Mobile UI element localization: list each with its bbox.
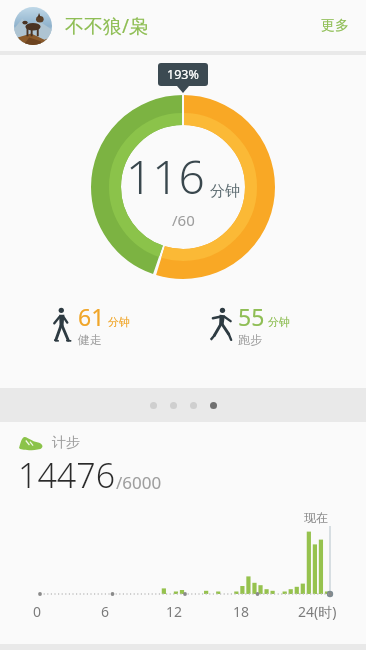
staticText: 14476 (18, 452, 116, 498)
staticText: 6 (101, 602, 110, 621)
button[interactable]: 不不狼/枭 (65, 13, 149, 39)
button[interactable]: Profile picture (14, 7, 52, 45)
button[interactable]: 193% (0, 55, 366, 388)
staticText: 更多 (321, 17, 349, 35)
staticText: 12 (166, 602, 183, 621)
staticText: /6000 (116, 471, 162, 494)
staticText: 0 (33, 602, 42, 621)
button[interactable]: 55 (210, 301, 290, 347)
button[interactable]: 更多 (304, 3, 366, 49)
staticText: 现在 (304, 510, 328, 525)
staticText: 193% (167, 66, 199, 83)
staticText: 61 (78, 301, 105, 332)
staticText: 18 (233, 602, 250, 621)
button[interactable]: Page 3 (190, 402, 197, 409)
button[interactable]: Page 4 (210, 402, 217, 409)
staticText: 分钟 (108, 315, 130, 329)
staticText: 分钟 (268, 315, 290, 329)
staticText: 55 (238, 301, 265, 332)
staticText: 24(时) (298, 602, 337, 621)
staticText: 分钟 (210, 182, 240, 201)
button[interactable]: Page 1 (150, 402, 157, 409)
staticText: 116 (126, 145, 205, 208)
staticText: 不不狼/枭 (65, 13, 149, 39)
staticText: 计步 (52, 434, 80, 452)
button[interactable]: Page 2 (170, 402, 177, 409)
staticText: 跑步 (238, 332, 262, 347)
button[interactable]: 计步 (0, 422, 366, 644)
button[interactable]: 61 (50, 301, 130, 347)
staticText: /60 (172, 210, 195, 230)
staticText: 健走 (78, 332, 102, 347)
